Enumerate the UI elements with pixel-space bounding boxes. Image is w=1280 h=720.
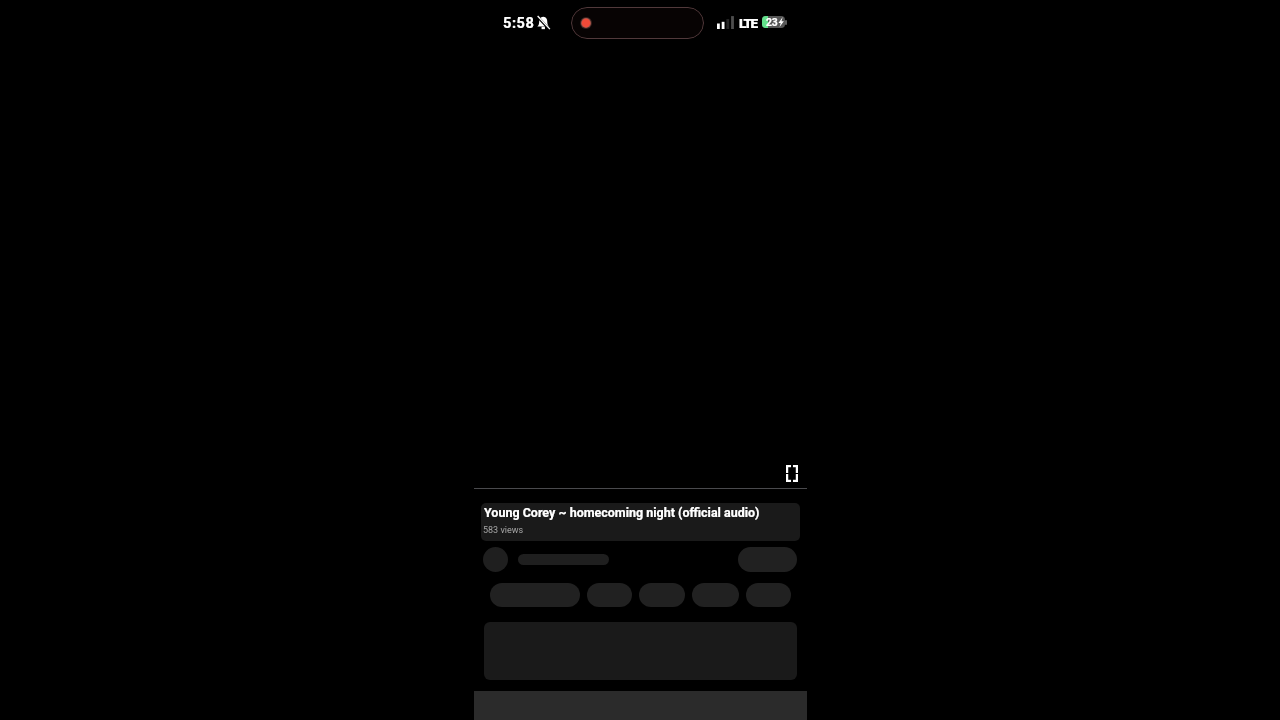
- button[interactable]: Remix: [692, 583, 739, 607]
- button[interactable]: Subscribe: [738, 547, 797, 572]
- button[interactable]: Save: [746, 583, 791, 607]
- button[interactable]: Channel: [483, 547, 609, 572]
- staticText: LTE: [739, 15, 757, 31]
- staticText: Young Corey ~ homecoming night (official…: [484, 505, 760, 520]
- button[interactable]: Share: [587, 583, 632, 607]
- button[interactable]: Young Corey ~ homecoming night (official…: [481, 503, 800, 541]
- staticText: 583 views: [483, 525, 524, 536]
- staticText: 5:58: [503, 14, 535, 31]
- button[interactable]: Fullscreen: [781, 462, 803, 484]
- staticText: 23: [766, 16, 778, 28]
- button[interactable]: Download: [639, 583, 685, 607]
- button[interactable]: Like and dislike: [490, 583, 580, 607]
- button[interactable]: Video player: [474, 45, 807, 488]
